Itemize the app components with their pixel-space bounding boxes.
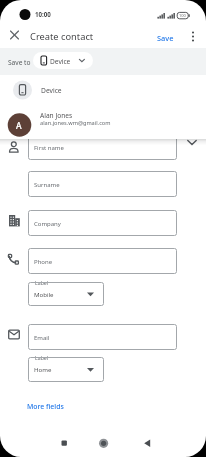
staticText: Company [34, 220, 61, 228]
button[interactable] [6, 27, 23, 44]
button[interactable] [54, 433, 74, 453]
button[interactable]: A [0, 107, 206, 139]
button[interactable] [28, 324, 177, 350]
staticText: Label [35, 279, 49, 286]
staticText: Save to [8, 58, 31, 67]
button[interactable]: Save [157, 33, 174, 43]
staticText: Phone [34, 258, 53, 266]
staticText: Home [34, 365, 52, 373]
staticText: Surname [34, 181, 60, 189]
staticText: Label [35, 354, 49, 361]
button[interactable] [28, 134, 177, 160]
button[interactable] [184, 137, 200, 149]
staticText: 100 [179, 13, 186, 18]
staticText: First name [34, 144, 64, 152]
button[interactable] [137, 433, 157, 453]
staticText: Mobile [34, 290, 54, 298]
staticText: Device [50, 57, 71, 66]
button[interactable] [28, 248, 177, 274]
staticText: Device [41, 86, 62, 95]
button[interactable]: Label [28, 282, 104, 306]
staticText: Create contact [30, 30, 94, 43]
button[interactable]: Label [28, 357, 104, 382]
staticText: 10:00 [35, 10, 51, 18]
button[interactable]: Device [0, 75, 206, 105]
button[interactable]: Device [33, 52, 93, 69]
button[interactable] [28, 171, 177, 197]
button[interactable] [28, 210, 177, 236]
staticText: A [16, 120, 22, 132]
staticText: Email [34, 334, 50, 342]
staticText: Alan Jones [40, 111, 73, 120]
staticText: alan.jones.wm@gmail.com [40, 119, 111, 127]
button[interactable] [94, 433, 114, 453]
button[interactable]: More fields [27, 402, 64, 411]
button[interactable] [187, 29, 199, 45]
